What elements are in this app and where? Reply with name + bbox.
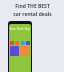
staticText: Your Best Trip <box>10 27 30 31</box>
staticText: car rental deals <box>13 11 52 18</box>
staticText: Find THE BEST <box>15 3 50 10</box>
